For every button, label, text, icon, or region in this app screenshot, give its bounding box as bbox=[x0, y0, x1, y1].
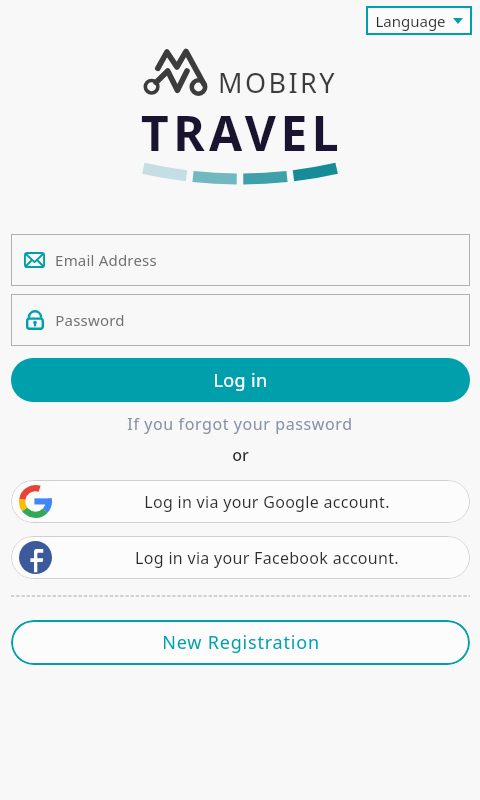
button[interactable]: Log in via your Google account. bbox=[11, 480, 470, 523]
staticText: Email Address bbox=[55, 250, 157, 270]
button[interactable]: If you forgot your password bbox=[0, 411, 480, 437]
staticText: or bbox=[232, 444, 249, 466]
staticText: MOBIRY bbox=[218, 64, 337, 101]
staticText: If you forgot your password bbox=[127, 413, 353, 435]
staticText: Log in via your Google account. bbox=[144, 491, 390, 513]
button[interactable]: Log in via your Facebook account. bbox=[11, 536, 470, 579]
staticText: New Registration bbox=[162, 630, 320, 655]
button[interactable]: Password bbox=[11, 294, 470, 346]
button[interactable]: New Registration bbox=[11, 620, 470, 665]
staticText: Language bbox=[375, 11, 446, 31]
staticText: Password bbox=[55, 310, 125, 330]
staticText: Log in bbox=[213, 368, 268, 393]
button[interactable]: Email Address bbox=[11, 234, 470, 286]
button[interactable]: Language bbox=[366, 6, 472, 35]
button[interactable]: Log in bbox=[11, 358, 470, 402]
staticText: Log in via your Facebook account. bbox=[135, 547, 399, 569]
staticText: TRAVEL bbox=[141, 100, 343, 165]
